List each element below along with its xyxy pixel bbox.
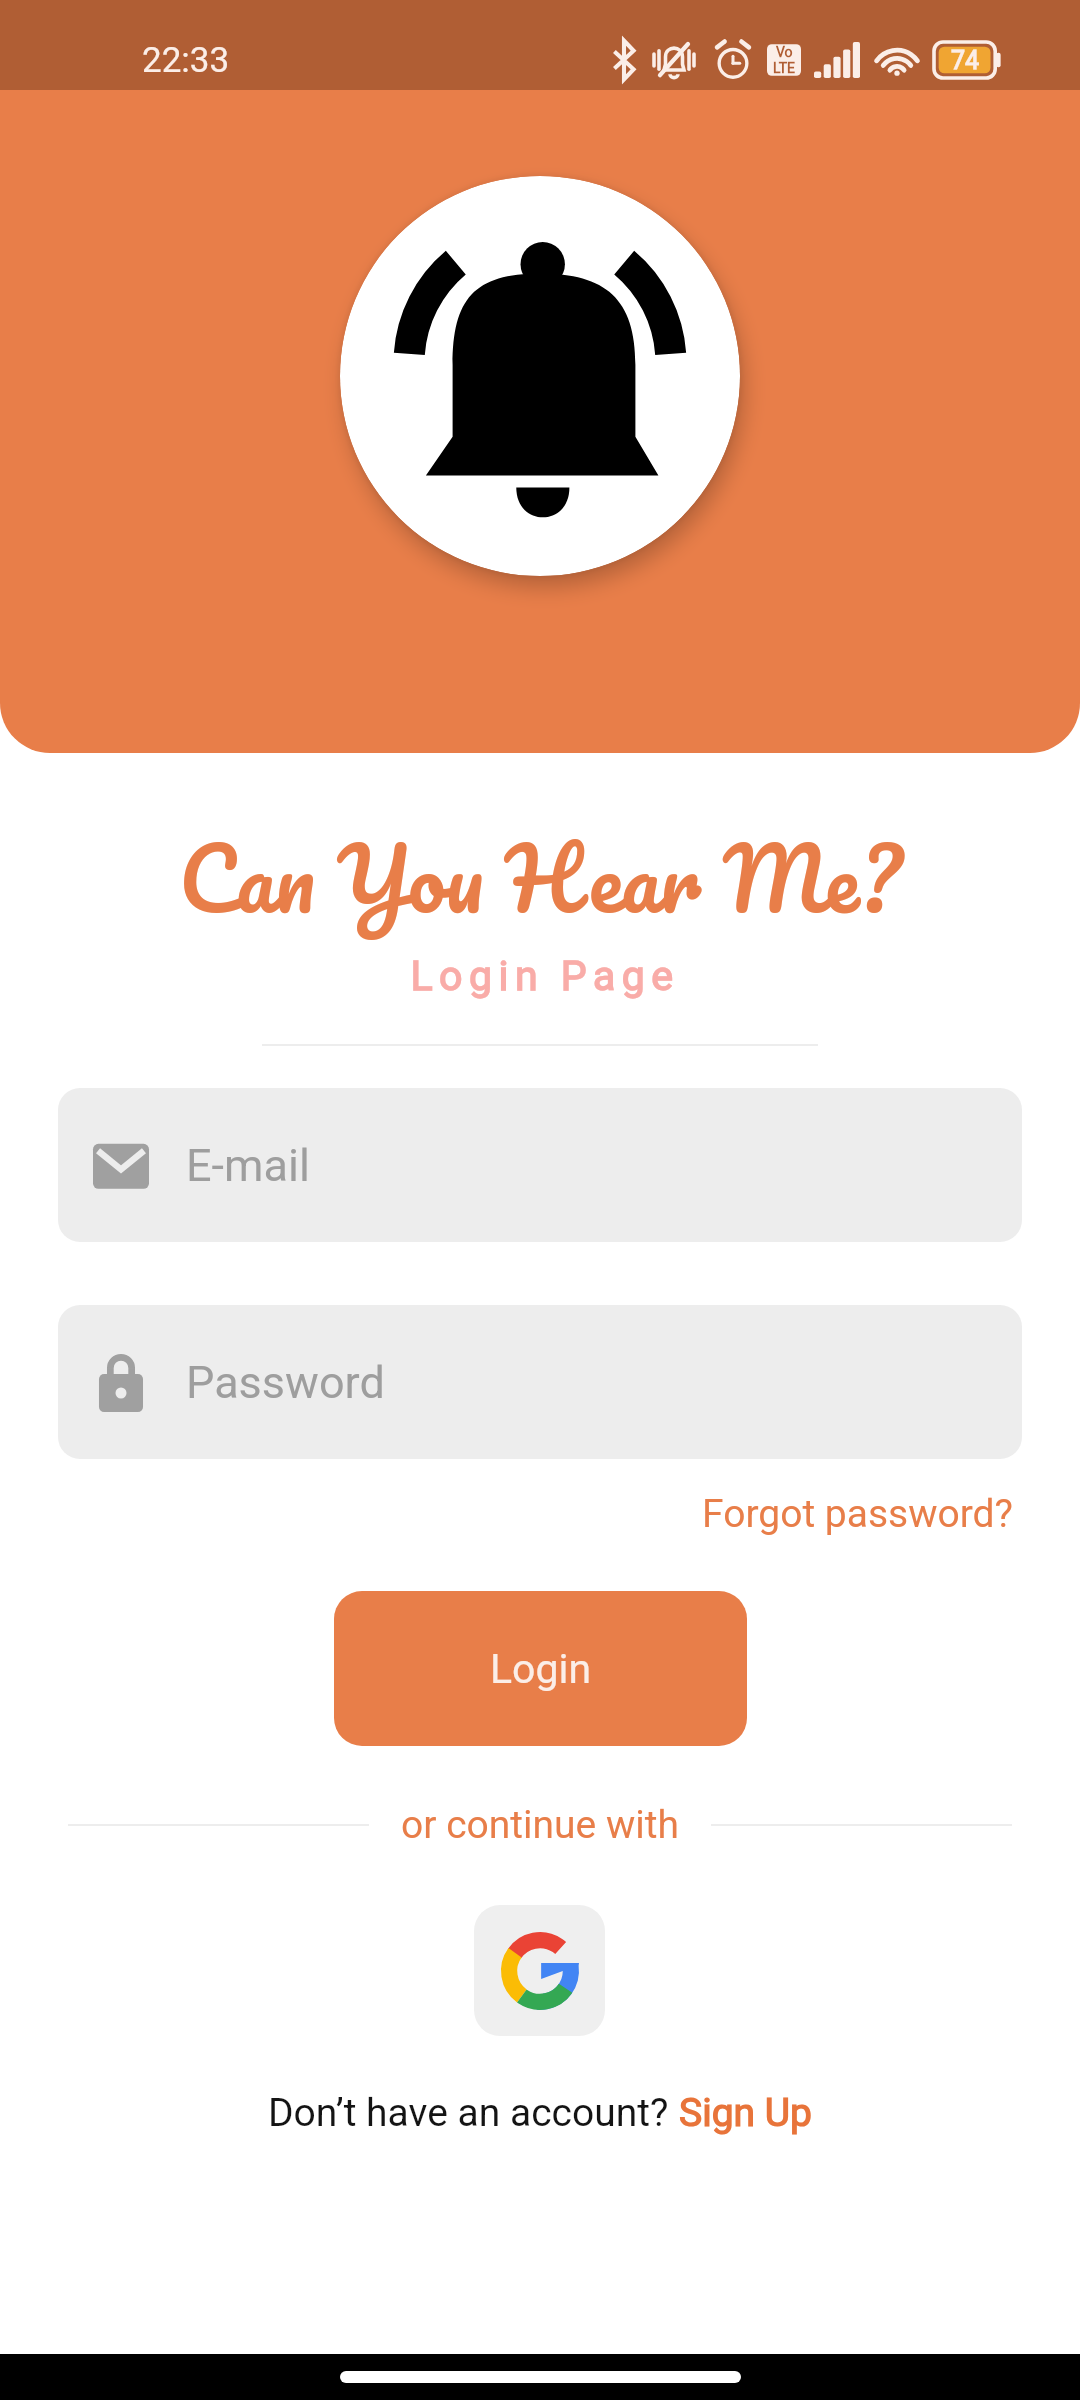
staticText: LTE <box>773 60 795 76</box>
staticText: Can You Hear Me? <box>0 805 1080 951</box>
staticText: Password <box>186 1356 385 1409</box>
button[interactable]: Password <box>58 1305 1022 1459</box>
staticText: Don’t have an account? <box>268 2090 679 2136</box>
button[interactable]: Login <box>334 1591 747 1746</box>
button[interactable]: Forgot password? <box>702 1485 1080 1543</box>
staticText: Vo <box>776 44 793 60</box>
staticText: Login <box>490 1645 592 1693</box>
staticText: or continue with <box>401 1802 679 1848</box>
staticText: E-mail <box>186 1139 310 1192</box>
staticText: 22:33 <box>142 40 230 81</box>
staticText: Login Page <box>5 952 1080 1000</box>
button[interactable]: Continue with Google <box>474 1905 605 2036</box>
button[interactable]: E-mail <box>58 1088 1022 1242</box>
staticText: 74 <box>951 46 980 75</box>
button[interactable]: Sign Up <box>679 2090 812 2136</box>
